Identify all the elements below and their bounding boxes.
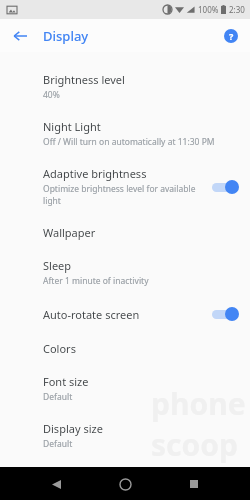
- button[interactable]: Sleep: [0, 249, 250, 296]
- staticText: Colors: [43, 341, 76, 356]
- staticText: Wallpaper: [43, 225, 96, 240]
- staticText: Night Light: [43, 119, 101, 134]
- staticText: Display size: [43, 421, 103, 436]
- button[interactable]: Recent apps: [183, 473, 205, 495]
- staticText: Default: [43, 438, 73, 450]
- button[interactable]: Auto-rotate screen: [0, 296, 250, 332]
- button[interactable]: Night Light: [0, 110, 250, 157]
- staticText: 100%: [198, 4, 219, 15]
- staticText: Off / Will turn on automatically at 11:3…: [43, 136, 215, 148]
- staticText: Auto-rotate screen: [43, 307, 140, 322]
- staticText: ?: [229, 30, 234, 42]
- staticText: Adaptive brightness: [43, 166, 147, 181]
- staticText: scoop: [151, 424, 238, 465]
- button[interactable]: Back: [8, 24, 32, 48]
- staticText: 40%: [43, 89, 60, 101]
- staticText: After 1 minute of inactivity: [43, 275, 149, 287]
- staticText: Sleep: [43, 258, 72, 273]
- staticText: phone: [151, 383, 246, 424]
- staticText: Font size: [43, 374, 89, 389]
- staticText: 2:30: [229, 4, 245, 15]
- staticText: Brightness level: [43, 72, 125, 87]
- button[interactable]: Font size: [0, 365, 250, 412]
- staticText: Default: [43, 391, 73, 403]
- button[interactable]: Home: [114, 473, 136, 495]
- button[interactable]: Display size: [0, 412, 250, 459]
- button[interactable]: Wallpaper: [0, 216, 250, 249]
- button[interactable]: Colors: [0, 332, 250, 365]
- button[interactable]: Back: [45, 473, 67, 495]
- button[interactable]: Adaptive brightness: [0, 157, 250, 216]
- staticText: Optimize brightness level for available …: [43, 183, 204, 207]
- button[interactable]: Brightness level: [0, 63, 250, 110]
- button[interactable]: Help: [220, 25, 242, 47]
- staticText: Display: [43, 27, 89, 45]
